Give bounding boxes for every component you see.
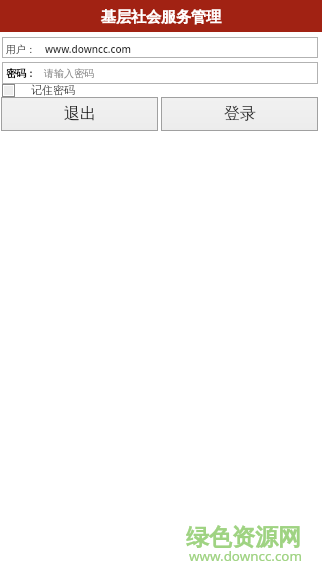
- staticText: 用户：: [6, 43, 36, 56]
- staticText: www.downcc.com: [45, 42, 132, 56]
- button[interactable]: 登录: [161, 97, 318, 131]
- staticText: 记住密码: [31, 83, 75, 97]
- button[interactable]: 退出: [1, 97, 158, 131]
- staticText: 密码：: [6, 67, 36, 80]
- staticText: 登录: [224, 104, 256, 124]
- staticText: 退出: [64, 104, 96, 124]
- staticText: www.downcc.com: [189, 547, 302, 565]
- button[interactable]: 用户：: [2, 37, 318, 58]
- button[interactable]: 记住密码: [0, 83, 322, 97]
- button[interactable]: 密码：: [2, 62, 318, 84]
- staticText: 绿色资源网: [186, 523, 301, 552]
- staticText: 基层社会服务管理: [101, 8, 221, 27]
- staticText: 请输入密码: [44, 67, 94, 80]
